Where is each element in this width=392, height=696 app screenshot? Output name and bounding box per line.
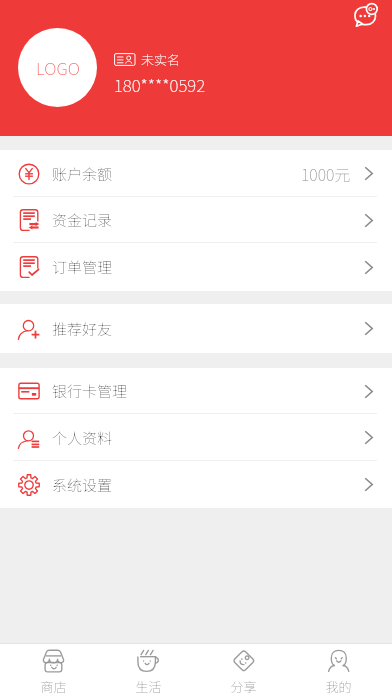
- staticText: 资金记录: [52, 209, 113, 231]
- button[interactable]: 我的: [291, 644, 386, 696]
- staticText: 商店: [40, 677, 67, 696]
- staticText: 1000元: [301, 162, 351, 185]
- button[interactable]: 账户余额: [0, 150, 392, 197]
- staticText: 推荐好友: [52, 318, 113, 340]
- button[interactable]: 生活: [101, 644, 196, 696]
- button[interactable]: 推荐好友: [0, 304, 392, 353]
- button[interactable]: 订单管理: [0, 243, 392, 291]
- staticText: 未实名: [141, 50, 181, 69]
- staticText: 订单管理: [52, 256, 113, 278]
- staticText: 账户余额: [52, 163, 113, 185]
- button[interactable]: 商店: [6, 644, 101, 696]
- staticText: 生活: [135, 677, 162, 696]
- button[interactable]: 资金记录: [0, 197, 392, 243]
- button[interactable]: 系统设置: [0, 461, 392, 508]
- staticText: LOGO: [36, 55, 80, 80]
- button[interactable]: 分享: [196, 644, 291, 696]
- button[interactable]: Messages: [354, 3, 378, 27]
- staticText: 分享: [230, 677, 257, 696]
- staticText: 银行卡管理: [52, 380, 128, 402]
- button[interactable]: 银行卡管理: [0, 368, 392, 414]
- button[interactable]: 个人资料: [0, 414, 392, 461]
- staticText: 我的: [325, 677, 352, 696]
- staticText: 系统设置: [52, 474, 113, 496]
- staticText: 180****0592: [114, 72, 206, 97]
- staticText: 个人资料: [52, 427, 113, 449]
